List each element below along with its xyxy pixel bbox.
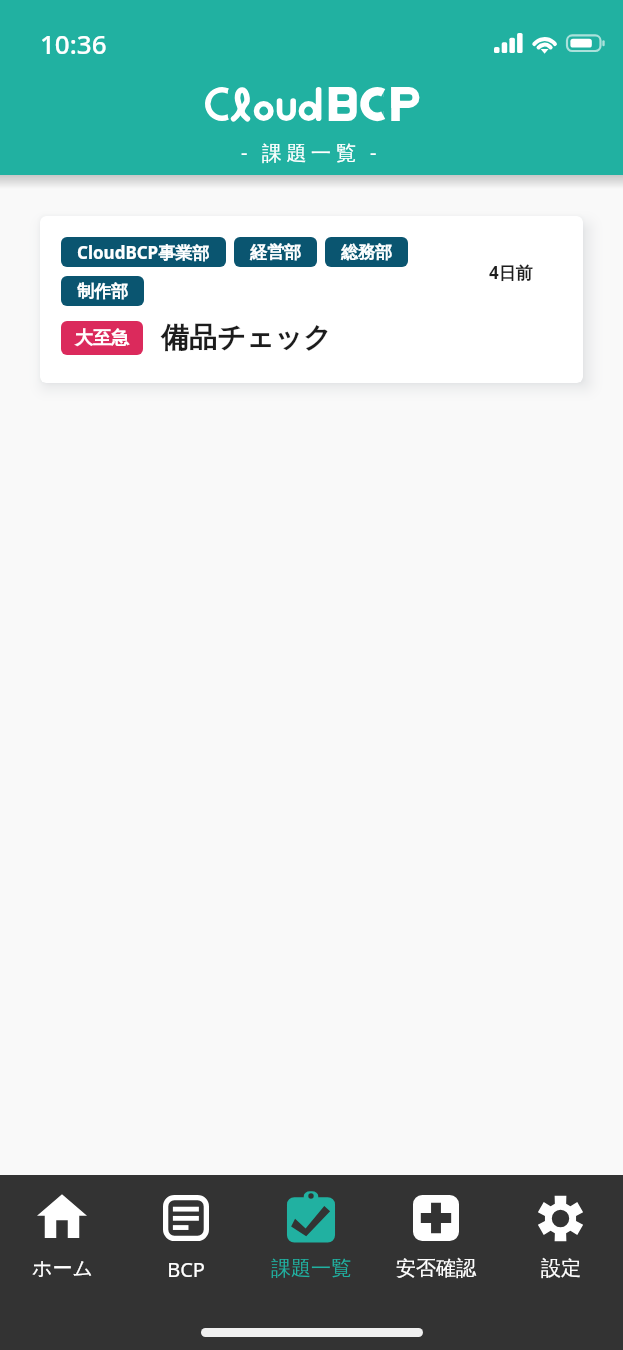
button[interactable]: 課題一覧 bbox=[248, 1175, 373, 1293]
button[interactable]: CloudBCP事業部 bbox=[40, 216, 583, 383]
staticText: 安否確認 bbox=[396, 1256, 476, 1281]
button[interactable]: BCP bbox=[124, 1175, 248, 1293]
button[interactable]: 設定 bbox=[498, 1175, 623, 1293]
staticText: 制作部 bbox=[77, 281, 128, 302]
staticText: BCP bbox=[167, 1256, 205, 1283]
button[interactable]: 安否確認 bbox=[373, 1175, 498, 1293]
staticText: 課題一覧 bbox=[271, 1256, 351, 1281]
staticText: 総務部 bbox=[341, 242, 392, 263]
staticText: CloudBCP事業部 bbox=[77, 241, 210, 264]
staticText: 大至急 bbox=[75, 327, 129, 350]
staticText: ホーム bbox=[32, 1256, 93, 1281]
staticText: 備品チェック bbox=[161, 320, 332, 355]
staticText: 4日前 bbox=[489, 261, 533, 284]
staticText: - 課題一覧 - bbox=[241, 139, 382, 166]
button[interactable]: ホーム bbox=[0, 1175, 124, 1293]
staticText: 経営部 bbox=[250, 242, 301, 263]
staticText: 設定 bbox=[541, 1256, 581, 1281]
staticText: 10:36 bbox=[40, 26, 107, 61]
